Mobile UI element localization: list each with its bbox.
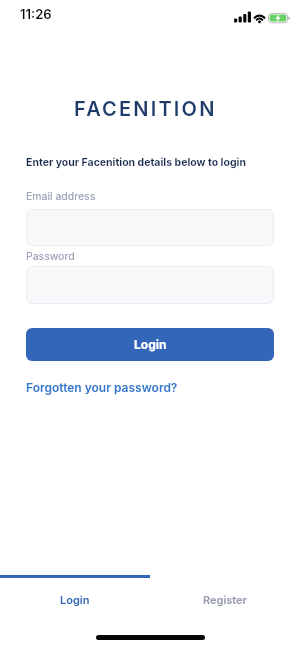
staticText: Login [60,593,90,606]
staticText: Login [134,337,167,352]
button[interactable] [26,266,274,304]
staticText: Enter your Facenition details below to l… [26,156,246,169]
button[interactable]: Register [150,578,300,620]
staticText: FACENITION [74,97,217,121]
staticText: 11:26 [20,6,52,22]
staticText: Register [203,593,247,606]
button[interactable]: Forgotten your password? [26,380,178,395]
button[interactable]: Login [26,328,274,361]
staticText: Forgotten your password? [26,380,178,395]
button[interactable]: Login [0,578,150,620]
staticText: Email address [26,190,96,203]
button[interactable] [26,209,274,246]
staticText: Password [26,250,75,263]
